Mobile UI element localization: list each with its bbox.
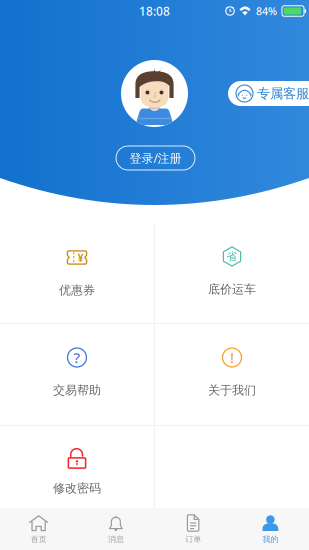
button[interactable]: 省 xyxy=(155,223,309,323)
staticText: 关于我们 xyxy=(208,383,256,398)
staticText: 18:08 xyxy=(139,3,170,19)
staticText: 省 xyxy=(226,250,237,263)
staticText: ! xyxy=(230,348,234,367)
button[interactable]: 消息 xyxy=(77,508,154,550)
staticText: 专属客服 xyxy=(257,85,309,102)
staticText: 首页 xyxy=(31,534,47,544)
button[interactable]: 登录/注册 xyxy=(116,146,195,170)
staticText: ? xyxy=(73,348,80,367)
button[interactable]: ! xyxy=(155,324,309,425)
staticText: 底价运车 xyxy=(208,282,256,297)
staticText: 登录/注册 xyxy=(129,150,181,166)
button[interactable]: 专属客服 xyxy=(228,81,309,106)
button[interactable]: ? xyxy=(0,324,154,425)
staticText: 我的 xyxy=(262,534,278,544)
staticText: 修改密码 xyxy=(53,481,101,496)
button[interactable]: ¥ xyxy=(0,223,154,323)
staticText: 消息 xyxy=(108,534,124,544)
staticText: 优惠券 xyxy=(59,283,95,298)
button[interactable]: 我的 xyxy=(232,508,309,550)
button[interactable]: 修改密码 xyxy=(0,426,154,508)
button[interactable]: 首页 xyxy=(0,508,77,550)
button[interactable]: 订单 xyxy=(154,508,232,550)
staticText: 84% xyxy=(256,4,277,18)
staticText: 订单 xyxy=(185,534,201,544)
staticText: ¥ xyxy=(77,250,83,265)
staticText: 交易帮助 xyxy=(53,383,101,398)
